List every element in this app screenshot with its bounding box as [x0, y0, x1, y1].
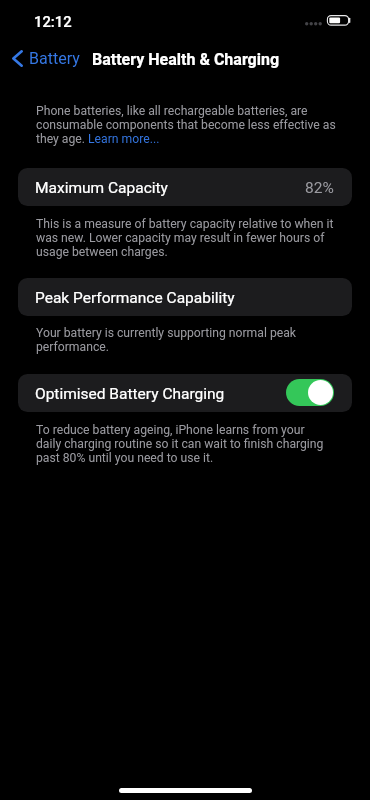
staticText: 82% [305, 179, 334, 197]
staticText: performance. [36, 340, 109, 354]
staticText: Battery [29, 49, 80, 68]
staticText: past 80% until you need to use it. [36, 451, 214, 465]
staticText: Peak Performance Capability [35, 289, 235, 307]
button[interactable]: Battery [7, 45, 88, 71]
staticText: was new. Lower capacity may result in fe… [36, 231, 325, 245]
staticText: Your battery is currently supporting nor… [36, 326, 296, 340]
button[interactable]: Optimised Battery Charging toggle [286, 379, 334, 406]
button[interactable]: Maximum Capacity [18, 168, 352, 206]
staticText: they age. Learn more... [36, 132, 160, 146]
staticText: Optimised Battery Charging [35, 385, 225, 403]
staticText: daily charging routine so it can wait to… [36, 437, 324, 451]
button[interactable]: Peak Performance Capability [18, 278, 352, 316]
staticText: 12:12 [34, 13, 72, 30]
staticText: Maximum Capacity [35, 179, 168, 197]
staticText: To reduce battery ageing, iPhone learns … [36, 423, 305, 437]
staticText: This is a measure of battery capacity re… [36, 217, 334, 231]
staticText: Battery Health & Charging [92, 50, 280, 69]
button[interactable]: Optimised Battery Charging [18, 374, 352, 412]
staticText: consumable components that become less e… [36, 118, 336, 132]
staticText: Phone batteries, like all rechargeable b… [36, 104, 308, 118]
staticText: usage between charges. [36, 245, 168, 259]
